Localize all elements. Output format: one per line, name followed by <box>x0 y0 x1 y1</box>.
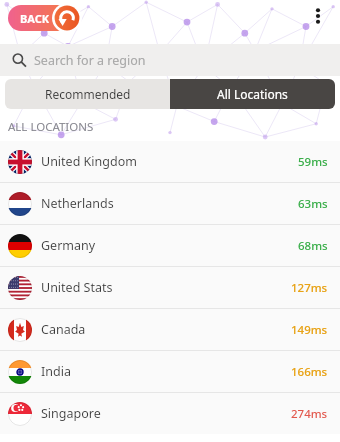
staticText: 149ms <box>291 322 328 338</box>
button[interactable]: United Stats <box>0 267 340 308</box>
staticText: 59ms <box>298 154 328 170</box>
button[interactable]: Canada <box>0 309 340 350</box>
staticText: ALL LOCATIONS <box>8 119 94 135</box>
button[interactable]: Recommended <box>5 79 170 109</box>
button[interactable]: Search for a region <box>0 44 340 76</box>
button[interactable]: More options <box>306 4 330 28</box>
staticText: Search for a region <box>34 52 146 69</box>
staticText: Netherlands <box>41 195 114 212</box>
button[interactable]: India <box>0 351 340 392</box>
button[interactable]: All Locations <box>170 79 335 109</box>
button[interactable]: BACK <box>8 5 80 31</box>
button[interactable]: United Kingdom <box>0 141 340 182</box>
staticText: Canada <box>41 321 86 338</box>
staticText: 68ms <box>298 238 328 254</box>
staticText: 274ms <box>291 406 328 422</box>
button[interactable]: Germany <box>0 225 340 266</box>
staticText: India <box>41 363 71 380</box>
staticText: All Locations <box>217 86 288 102</box>
staticText: Germany <box>41 237 96 254</box>
staticText: United Stats <box>41 279 113 296</box>
staticText: BACK <box>20 11 50 26</box>
staticText: United Kingdom <box>41 153 137 170</box>
button[interactable]: Singapore <box>0 393 340 434</box>
staticText: 127ms <box>291 280 328 296</box>
staticText: 63ms <box>298 196 328 212</box>
staticText: Singapore <box>41 405 101 422</box>
button[interactable]: Netherlands <box>0 183 340 224</box>
button[interactable]: Back <box>52 3 82 33</box>
staticText: Recommended <box>45 86 131 102</box>
staticText: 166ms <box>291 364 328 380</box>
